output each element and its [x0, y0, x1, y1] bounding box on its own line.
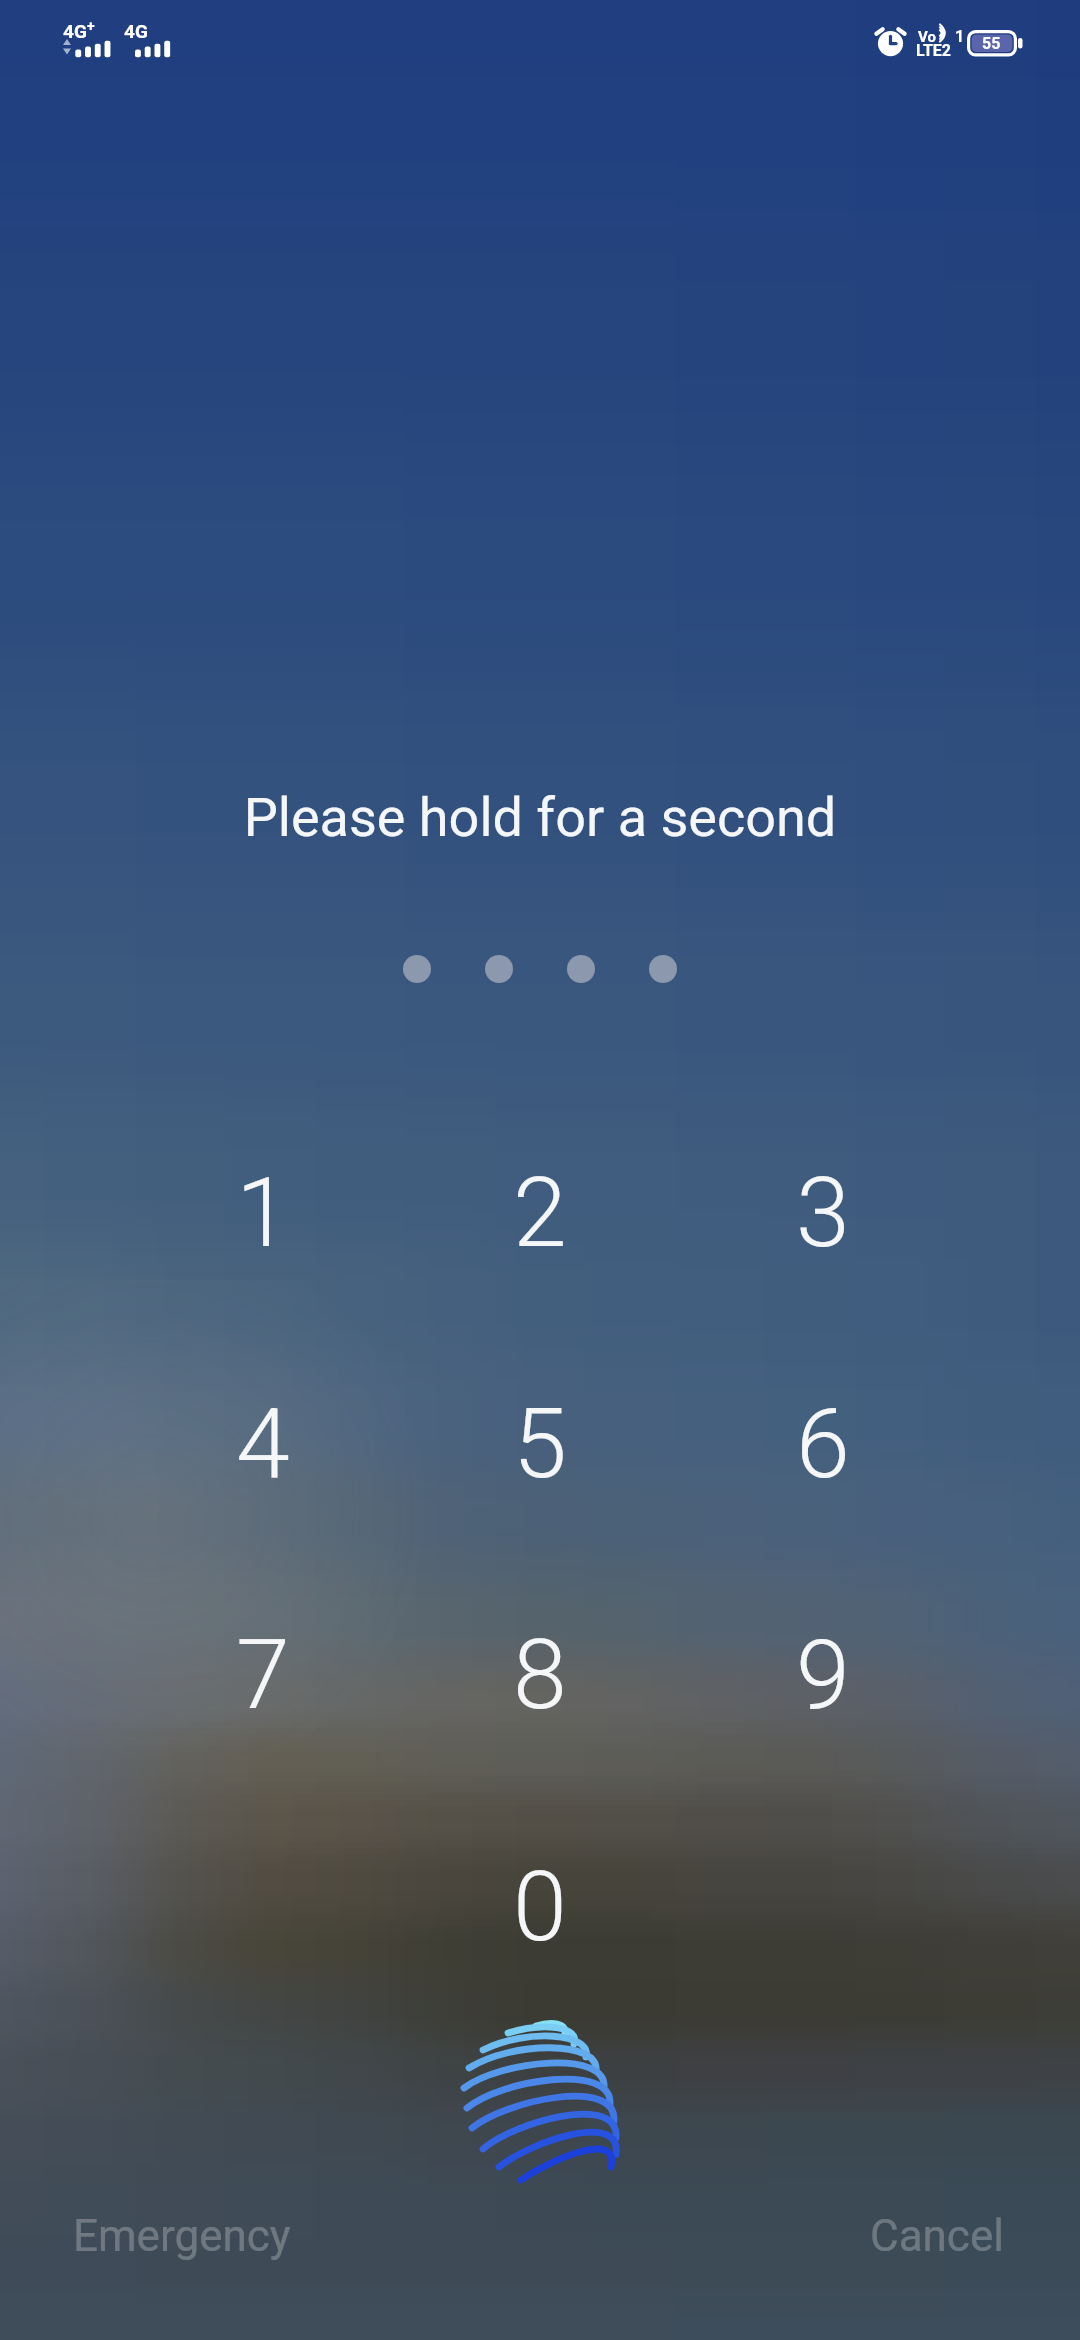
- staticText: 5: [513, 1387, 567, 1501]
- staticText: 4: [236, 1387, 290, 1501]
- button[interactable]: 3: [713, 1103, 933, 1323]
- staticText: Cancel: [870, 2210, 1004, 2262]
- button[interactable]: 1: [153, 1103, 373, 1323]
- button[interactable]: 8: [430, 1565, 650, 1785]
- button[interactable]: 6: [713, 1334, 933, 1554]
- staticText: 6: [796, 1387, 850, 1501]
- staticText: 4G: [124, 20, 148, 42]
- button[interactable]: Emergency: [43, 2192, 321, 2280]
- staticText: Emergency: [73, 2210, 291, 2262]
- staticText: 55: [982, 34, 1001, 53]
- staticText: Vo: [918, 28, 936, 46]
- staticText: 8: [513, 1618, 567, 1732]
- button[interactable]: 4: [153, 1334, 373, 1554]
- staticText: 7: [236, 1618, 290, 1732]
- button[interactable]: 0: [430, 1797, 650, 2017]
- button[interactable]: 7: [153, 1565, 373, 1785]
- staticText: +: [87, 18, 95, 34]
- staticText: 1: [236, 1156, 290, 1270]
- staticText: 0: [513, 1850, 567, 1964]
- button[interactable]: 9: [713, 1565, 933, 1785]
- button[interactable]: 2: [430, 1103, 650, 1323]
- staticText: 4G: [63, 20, 87, 42]
- button[interactable]: Cancel: [840, 2192, 1034, 2280]
- staticText: 2: [513, 1156, 567, 1270]
- staticText: 1: [955, 27, 965, 46]
- staticText: LTE2: [916, 41, 951, 60]
- staticText: 3: [796, 1156, 850, 1270]
- staticText: 9: [796, 1618, 850, 1732]
- button[interactable]: 5: [430, 1334, 650, 1554]
- other: Carrier logo: [450, 2010, 630, 2190]
- staticText: Please hold for a second: [0, 786, 1080, 849]
